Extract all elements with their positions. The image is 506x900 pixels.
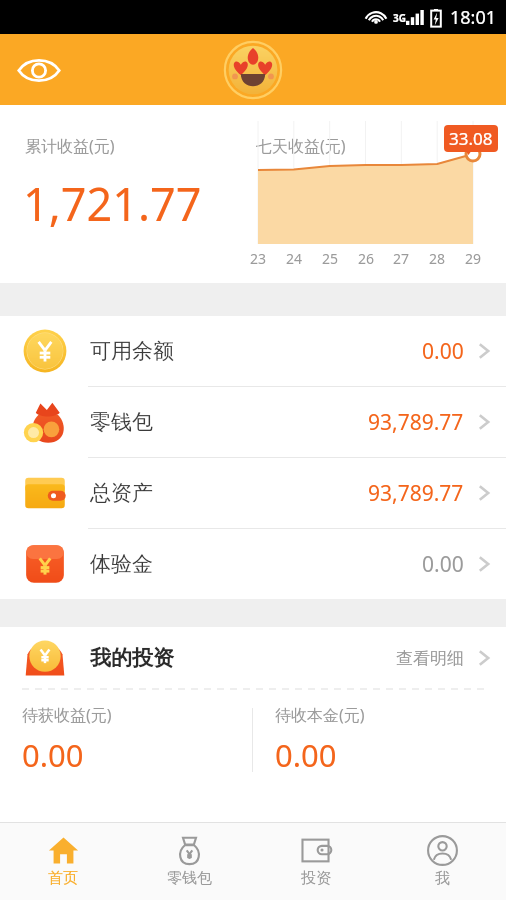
button[interactable]: 投资 — [252, 823, 379, 900]
staticText: 29 — [465, 249, 482, 268]
staticText: 18:01 — [450, 5, 497, 30]
staticText: 我的投资 — [90, 645, 174, 671]
staticText: 33.08 — [449, 127, 493, 150]
staticText: 0.00 — [275, 734, 337, 776]
staticText: 3G — [393, 11, 406, 25]
button[interactable]: Toggle balance visibility — [12, 43, 66, 97]
staticText: 1,721.77 — [23, 173, 202, 234]
staticText: 可用余额 — [90, 338, 174, 364]
staticText: 28 — [429, 249, 446, 268]
button[interactable]: Profile avatar — [224, 41, 282, 99]
staticText: 0.00 — [422, 550, 464, 579]
staticText: 查看明细 — [396, 648, 464, 669]
staticText: 首页 — [48, 869, 78, 888]
button[interactable]: 首页 — [0, 823, 126, 900]
staticText: 体验金 — [90, 551, 153, 577]
staticText: 零钱包 — [90, 409, 153, 435]
button[interactable]: 可用余额 — [0, 316, 506, 386]
staticText: 93,789.77 — [368, 408, 464, 437]
staticText: 投资 — [301, 869, 331, 888]
staticText: 总资产 — [90, 480, 153, 506]
staticText: 七天收益(元) — [256, 135, 346, 157]
staticText: 25 — [322, 249, 339, 268]
staticText: 待获收益(元) — [22, 704, 112, 726]
staticText: 待收本金(元) — [275, 704, 365, 726]
staticText: 零钱包 — [167, 869, 212, 888]
staticText: 93,789.77 — [368, 479, 464, 508]
button[interactable]: 我 — [379, 823, 506, 900]
button[interactable]: 零钱包 — [126, 823, 252, 900]
button[interactable]: 我的投资 — [0, 627, 506, 689]
button[interactable]: 零钱包 — [0, 387, 506, 457]
staticText: 27 — [393, 249, 410, 268]
staticText: 24 — [286, 249, 303, 268]
staticText: 26 — [358, 249, 375, 268]
staticText: 0.00 — [22, 734, 84, 776]
button[interactable]: 体验金 — [0, 529, 506, 599]
staticText: 0.00 — [422, 337, 464, 366]
staticText: 我 — [435, 869, 450, 888]
staticText: 累计收益(元) — [25, 135, 115, 157]
button[interactable]: 总资产 — [0, 458, 506, 528]
staticText: 23 — [250, 249, 267, 268]
